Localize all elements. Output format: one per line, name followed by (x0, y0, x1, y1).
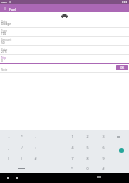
button[interactable]: Backspace (110, 131, 126, 142)
staticText: 0 (1, 59, 3, 63)
staticText: 1 (71, 134, 74, 139)
staticText: Price (1, 48, 8, 52)
button[interactable]: # (95, 163, 111, 174)
staticText: Dodge (1, 22, 11, 26)
staticText: Amount (1, 38, 12, 42)
staticText: . (35, 135, 36, 139)
button[interactable]: # (29, 153, 42, 164)
staticText: TDI (1, 32, 7, 36)
staticText: 5 (86, 145, 89, 150)
staticText: 6 (102, 145, 105, 150)
staticText: - (8, 135, 10, 139)
staticText: Type (1, 29, 7, 33)
button[interactable]: Home (14, 175, 20, 181)
button[interactable]: 8 (79, 153, 95, 164)
staticText: ) (21, 157, 22, 161)
button[interactable]: ) (15, 153, 28, 164)
button[interactable]: Enter (113, 145, 129, 156)
staticText: * (71, 166, 73, 171)
button[interactable]: 6 (95, 142, 111, 153)
button[interactable]: Back (5, 175, 11, 181)
staticText: 9 (102, 156, 105, 161)
staticText: 275 (1, 50, 7, 54)
staticText: Date (1, 20, 7, 24)
button[interactable]: 5 (79, 142, 95, 153)
staticText: 0 (86, 166, 89, 171)
staticText: Note (1, 68, 8, 72)
staticText: , (8, 146, 9, 150)
staticText: / (21, 146, 23, 150)
staticText: 8 (86, 156, 89, 161)
button[interactable]: OK (116, 65, 128, 70)
staticText: 2 (86, 134, 89, 139)
button[interactable]: Menu (1, 4, 9, 12)
staticText: 10:44 (1, 1, 7, 4)
button[interactable]: / (15, 142, 28, 153)
button[interactable]: 0 (79, 163, 95, 174)
staticText: ( (8, 157, 9, 161)
button[interactable]: Space (8, 163, 34, 174)
staticText: 3 (102, 134, 105, 139)
button[interactable]: 1 (64, 131, 80, 142)
button[interactable]: 7 (64, 153, 80, 164)
staticText: # (34, 157, 37, 161)
button[interactable]: * (64, 163, 80, 174)
button[interactable]: Recent apps (95, 174, 103, 180)
button[interactable]: 9 (95, 153, 111, 164)
button[interactable]: 2 (79, 131, 95, 142)
staticText: * (21, 135, 23, 139)
button[interactable]: 3 (95, 131, 111, 142)
staticText: : (35, 146, 36, 150)
button[interactable]: * (15, 131, 28, 142)
staticText: # (102, 166, 105, 171)
staticText: Trip (1, 56, 6, 60)
staticText: Fuel (9, 7, 17, 12)
button[interactable]: 4 (64, 142, 80, 153)
staticText: 50 (1, 41, 5, 45)
staticText: OK (120, 66, 125, 70)
staticText: 4 (71, 145, 74, 150)
button[interactable]: ( (2, 153, 15, 164)
staticText: 7 (71, 156, 74, 161)
